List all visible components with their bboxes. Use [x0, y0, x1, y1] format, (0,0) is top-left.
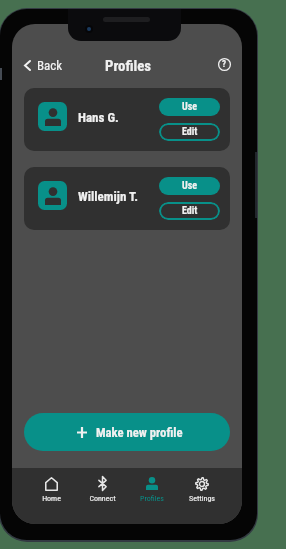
button[interactable]: Edit: [159, 202, 220, 220]
staticText: Use: [182, 101, 198, 113]
button[interactable]: Make new profile: [24, 413, 230, 451]
staticText: Profiles: [105, 57, 152, 74]
button[interactable]: Home: [26, 468, 77, 508]
staticText: Back: [37, 58, 63, 73]
button[interactable]: Connect: [77, 468, 127, 508]
staticText: Home: [42, 494, 61, 503]
staticText: Hans G.: [78, 110, 119, 125]
button[interactable]: Help: [214, 54, 234, 74]
button[interactable]: Use: [159, 177, 220, 195]
staticText: Connect: [89, 494, 116, 503]
staticText: Profiles: [140, 494, 164, 503]
button[interactable]: Use: [159, 98, 220, 116]
button[interactable]: Willemijn T.: [24, 167, 230, 230]
button[interactable]: Hans G.: [24, 88, 230, 151]
button[interactable]: Back: [19, 55, 68, 76]
staticText: Edit: [182, 126, 198, 138]
staticText: Edit: [182, 205, 198, 217]
staticText: ?: [222, 59, 227, 70]
staticText: Willemijn T.: [78, 189, 139, 204]
staticText: Settings: [189, 494, 215, 503]
staticText: Make new profile: [96, 425, 183, 440]
button[interactable]: Edit: [159, 123, 220, 141]
button[interactable]: Settings: [177, 468, 227, 508]
button[interactable]: Profiles: [127, 468, 177, 508]
staticText: Use: [182, 180, 198, 192]
